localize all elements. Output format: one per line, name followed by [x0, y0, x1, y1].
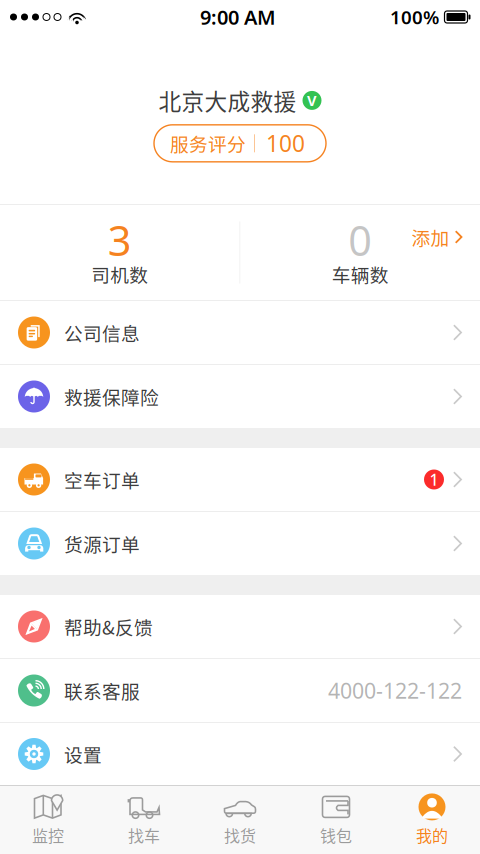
button[interactable]: 公司信息 [0, 301, 480, 364]
button[interactable]: 联系客服 [0, 659, 480, 722]
staticText: 我的 [416, 823, 448, 847]
button[interactable]: 货源订单 [0, 512, 480, 575]
staticText: 钱包 [320, 823, 352, 847]
button[interactable]: 设置 [0, 723, 480, 785]
staticText: 找货 [224, 823, 256, 847]
staticText: 添加 [411, 223, 449, 250]
staticText: 4000-122-122 [328, 676, 462, 705]
staticText: 100% [390, 5, 439, 29]
button[interactable]: 找车 [96, 786, 192, 854]
button[interactable]: 空车订单 [0, 448, 480, 511]
button[interactable]: 找货 [192, 786, 288, 854]
button[interactable]: 我的 [384, 786, 480, 854]
staticText: 1 [429, 469, 438, 490]
staticText: 帮助&反馈 [64, 613, 153, 640]
staticText: 找车 [128, 823, 160, 847]
staticText: 北京大成救援 [158, 84, 296, 117]
staticText: 救援保障险 [64, 383, 159, 410]
staticText: 司机数 [91, 260, 148, 287]
staticText: 设置 [64, 740, 102, 767]
staticText: 3 [108, 213, 132, 267]
button[interactable]: 钱包 [288, 786, 384, 854]
button[interactable]: 0 [240, 205, 480, 300]
staticText: 100 [266, 128, 305, 158]
staticText: 监控 [32, 823, 64, 847]
staticText: 联系客服 [64, 677, 140, 704]
staticText: 货源订单 [64, 530, 140, 557]
staticText: 车辆数 [332, 260, 389, 287]
staticText: V [307, 91, 317, 110]
staticText: 服务评分 [170, 130, 246, 157]
staticText: 9:00 AM [200, 4, 276, 30]
button[interactable]: 3 [0, 205, 239, 300]
button[interactable]: 监控 [0, 786, 96, 854]
button[interactable]: 救援保障险 [0, 365, 480, 428]
button[interactable]: 帮助&反馈 [0, 595, 480, 658]
staticText: 公司信息 [64, 319, 140, 346]
staticText: 空车订单 [64, 466, 140, 493]
staticText: 0 [348, 213, 372, 267]
